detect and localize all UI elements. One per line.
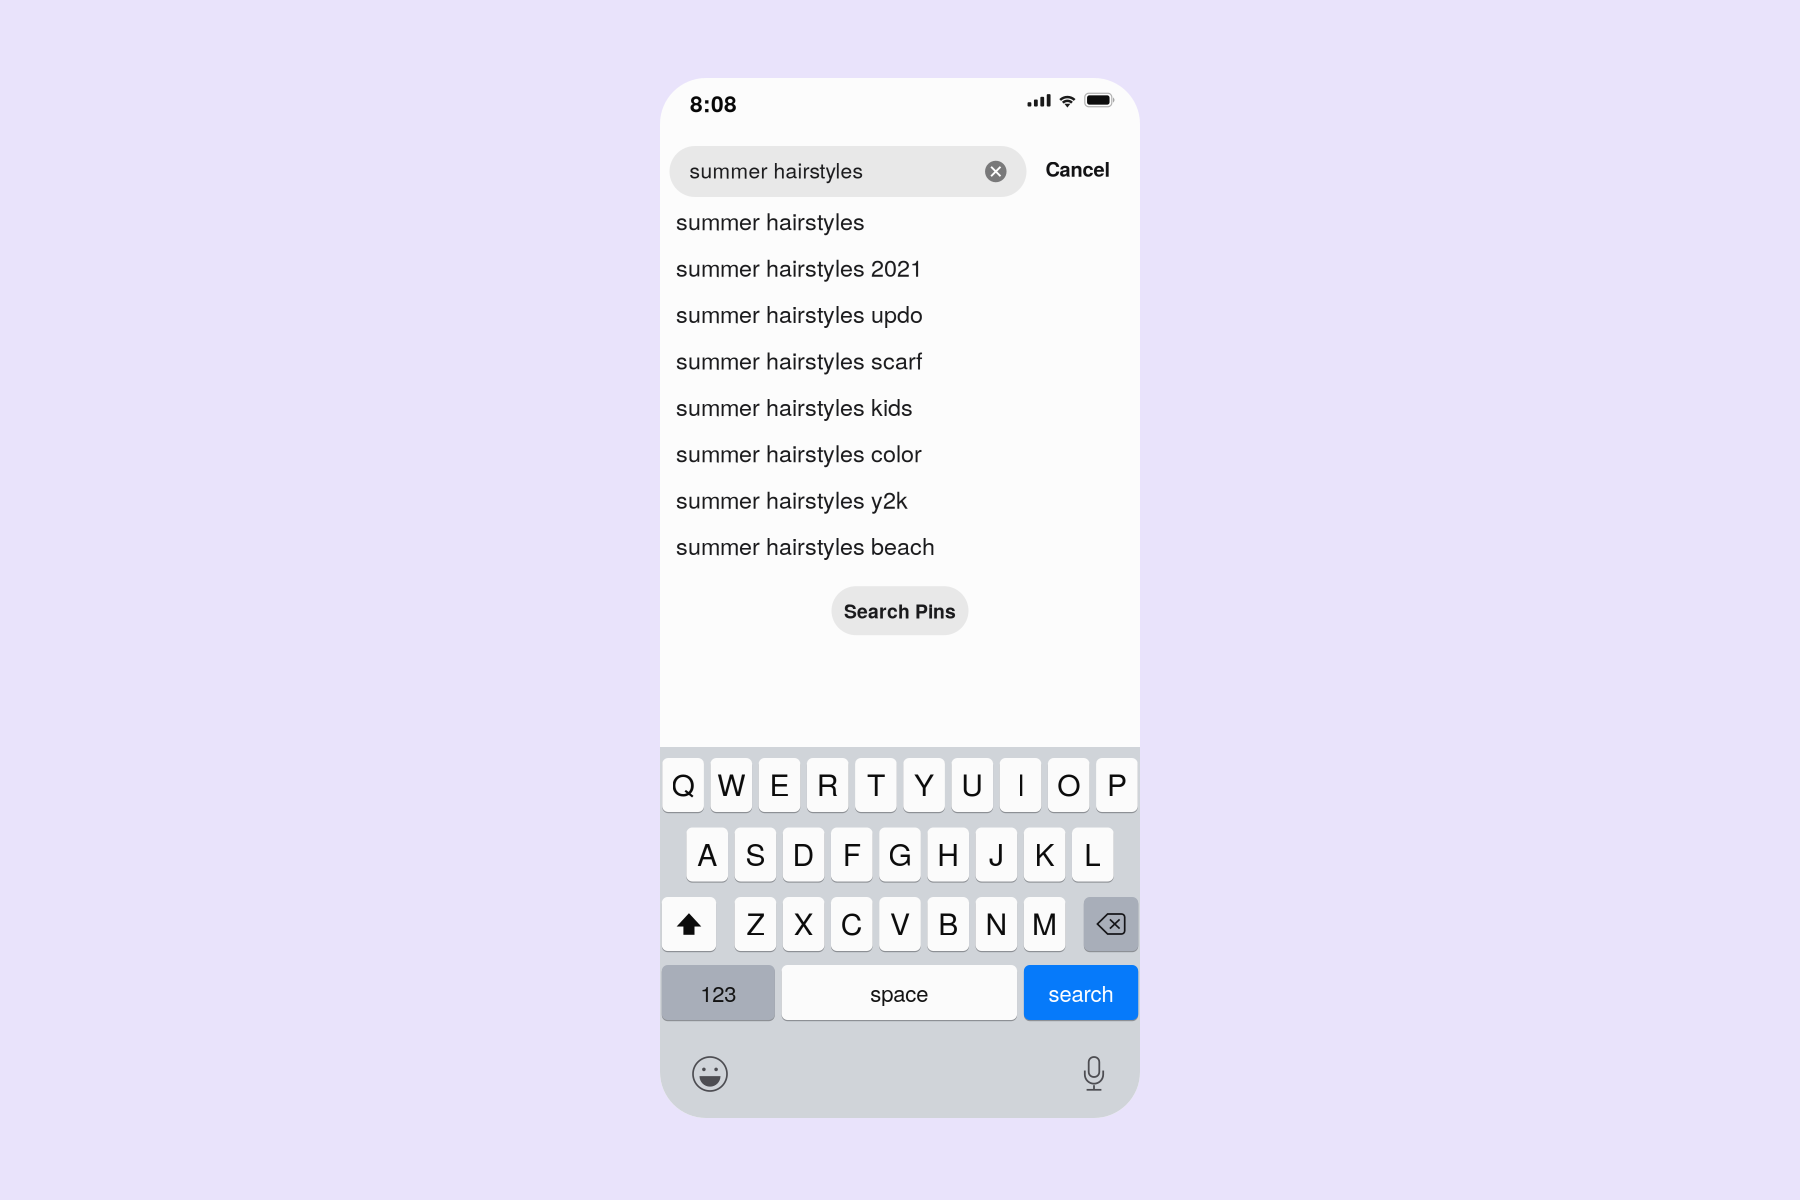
staticText: E [769,762,789,805]
button[interactable]: H [927,827,969,881]
staticText: G [888,831,911,874]
button[interactable]: J [975,827,1017,881]
staticText: summer hairstyles [689,154,863,185]
staticText: L [1084,831,1101,874]
staticText: N [985,901,1007,944]
staticText: F [843,831,861,874]
button[interactable]: I [1000,758,1041,812]
staticText: T [867,762,885,805]
staticText: 123 [700,977,736,1008]
staticText: 8:08 [690,87,737,119]
button[interactable]: N [975,897,1017,951]
button[interactable]: C [831,897,873,951]
button[interactable]: Delete [1084,897,1138,951]
button[interactable]: Q [662,758,704,812]
staticText: S [745,831,765,874]
button[interactable]: L [1072,827,1114,881]
button[interactable]: O [1048,758,1089,812]
button[interactable]: Emoji keyboard [692,1056,728,1092]
button[interactable]: summer hairstyles [660,197,1140,243]
button[interactable]: summer hairstyles scarf [660,336,1140,383]
staticText: K [1035,831,1055,874]
button[interactable]: P [1096,758,1138,812]
button[interactable]: B [927,897,969,951]
staticText: V [890,901,910,944]
button[interactable]: T [855,758,897,812]
staticText: Search Pins [844,597,956,625]
staticText: H [937,831,959,874]
button[interactable]: E [759,758,800,812]
button[interactable]: Shift [662,897,716,951]
button[interactable]: summer hairstyles 2021 [660,243,1140,290]
staticText: summer hairstyles [676,203,865,237]
staticText: I [1016,762,1024,805]
button[interactable]: D [783,827,824,881]
staticText: P [1107,762,1127,805]
button[interactable]: A [686,827,728,881]
button[interactable]: Dictation [1081,1055,1107,1093]
staticText: Z [746,901,764,944]
staticText: J [989,831,1004,874]
button[interactable]: U [951,758,993,812]
staticText: X [794,901,814,944]
staticText: D [793,831,815,874]
staticText: summer hairstyles beach [676,528,935,562]
staticText: B [938,901,958,944]
staticText: summer hairstyles scarf [676,343,922,376]
staticText: R [817,762,839,805]
button[interactable]: Cancel [1043,146,1113,197]
staticText: space [870,977,928,1008]
staticText: summer hairstyles kids [676,389,913,422]
button[interactable]: summer hairstyles updo [660,290,1140,336]
button[interactable]: K [1024,827,1065,881]
button[interactable]: space [782,965,1017,1020]
button[interactable]: summer hairstyles color [660,429,1140,475]
staticText: U [961,762,983,805]
button[interactable]: F [831,827,873,881]
button[interactable]: summer hairstyles y2k [660,475,1140,522]
button[interactable]: G [879,827,921,881]
staticText: summer hairstyles 2021 [676,250,923,283]
staticText: M [1032,901,1057,944]
button[interactable]: Y [903,758,945,812]
staticText: summer hairstyles updo [676,296,923,330]
button[interactable]: Z [734,897,776,951]
staticText: Y [914,762,934,805]
staticText: A [697,831,717,874]
button[interactable]: summer hairstyles beach [660,522,1140,568]
button[interactable]: summer hairstyles [669,146,1026,197]
button[interactable]: summer hairstyles kids [660,383,1140,429]
button[interactable]: Clear search text [979,154,1013,188]
button[interactable]: Search Pins [831,586,968,635]
staticText: summer hairstyles y2k [676,482,908,515]
button[interactable]: R [807,758,849,812]
staticText: search [1048,977,1113,1008]
button[interactable]: S [735,827,776,881]
button[interactable]: search [1024,965,1138,1020]
staticText: summer hairstyles color [676,435,922,469]
staticText: Cancel [1045,154,1110,183]
staticText: O [1057,762,1080,805]
button[interactable]: M [1024,897,1065,951]
button[interactable]: X [783,897,824,951]
staticText: Q [672,762,695,805]
button[interactable]: 123 [662,965,775,1020]
staticText: C [841,901,863,944]
staticText: W [717,762,745,805]
button[interactable]: W [710,758,752,812]
button[interactable]: V [879,897,921,951]
